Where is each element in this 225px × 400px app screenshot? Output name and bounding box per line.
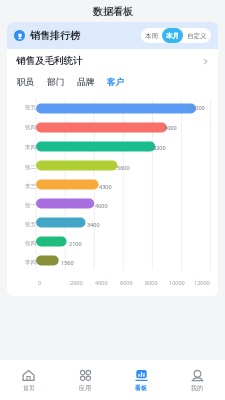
- staticText: 张五: [25, 221, 36, 228]
- button[interactable]: 职员: [16, 75, 35, 90]
- staticText: 12000: [194, 279, 210, 286]
- staticText: 李四: [25, 144, 36, 151]
- staticText: 9000: [164, 124, 177, 131]
- staticText: 自定义: [187, 32, 207, 40]
- staticText: 数据看板: [93, 5, 133, 18]
- staticText: 应用: [79, 384, 91, 392]
- staticText: 6000: [120, 279, 133, 286]
- staticText: 4000: [95, 279, 108, 286]
- button[interactable]: 看板: [113, 360, 169, 400]
- staticText: 职员: [17, 77, 34, 88]
- staticText: 本月: [166, 32, 179, 40]
- staticText: 品牌: [77, 77, 94, 88]
- staticText: 张二: [25, 164, 36, 171]
- button[interactable]: 客户: [106, 75, 125, 90]
- button[interactable]: 品牌: [76, 75, 95, 90]
- staticText: 8200: [153, 144, 166, 151]
- staticText: 4000: [95, 202, 108, 209]
- staticText: 首页: [23, 384, 35, 392]
- staticText: 3400: [87, 221, 100, 228]
- staticText: 张四: [25, 124, 36, 131]
- button[interactable]: 本周: [141, 28, 162, 43]
- staticText: 4300: [99, 183, 112, 190]
- button[interactable]: 自定义: [183, 28, 211, 43]
- button[interactable]: 首页: [0, 360, 57, 400]
- button[interactable]: 我的: [169, 360, 225, 400]
- other: More: [202, 58, 209, 65]
- staticText: 李三: [25, 183, 36, 190]
- staticText: 张一: [25, 202, 36, 209]
- staticText: 销售排行榜: [30, 29, 80, 42]
- staticText: 张五: [25, 104, 36, 111]
- staticText: 11000: [189, 104, 205, 111]
- button[interactable]: 销售及毛利统计: [7, 49, 218, 73]
- button[interactable]: 本月: [162, 28, 183, 43]
- button[interactable]: 应用: [57, 360, 113, 400]
- staticText: 10000: [169, 279, 185, 286]
- staticText: 1560: [61, 259, 74, 266]
- staticText: 客户: [107, 77, 124, 88]
- staticText: 销售及毛利统计: [16, 55, 83, 67]
- staticText: 张四: [25, 240, 36, 247]
- staticText: 2100: [69, 240, 82, 247]
- staticText: 部门: [47, 77, 64, 88]
- staticText: 5600: [117, 164, 130, 171]
- staticText: 我的: [191, 384, 203, 392]
- staticText: 8000: [145, 279, 158, 286]
- button[interactable]: 部门: [46, 75, 65, 90]
- staticText: 本周: [145, 32, 158, 40]
- staticText: 2000: [70, 279, 83, 286]
- staticText: 看板: [135, 384, 147, 392]
- staticText: 李四: [25, 259, 36, 266]
- staticText: 0: [38, 279, 42, 286]
